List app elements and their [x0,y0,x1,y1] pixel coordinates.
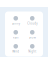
button[interactable]: Sunny [7,16,24,30]
button[interactable]: Cloudy [24,16,40,30]
button[interactable]: Night [24,44,40,58]
staticText: Sunny [12,22,20,25]
button[interactable]: Snow [24,30,40,44]
button[interactable]: Rain [7,30,24,44]
staticText: Rain [13,36,19,39]
button[interactable]: Wind [7,44,24,58]
staticText: Cloudy [27,22,37,25]
staticText: Night [28,50,36,53]
staticText: Wind [12,50,19,53]
staticText: Snow [29,36,36,39]
